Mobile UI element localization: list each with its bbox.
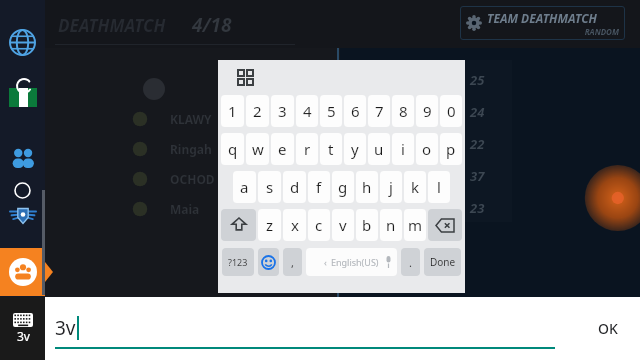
button[interactable]: e [271,133,294,165]
staticText: z [266,215,274,235]
staticText: 3v [17,328,30,344]
button[interactable]: w [246,133,269,165]
button[interactable]: f [308,171,330,203]
staticText: h [362,177,372,197]
staticText: 4/18 [192,12,232,38]
button[interactable]: a [233,171,256,203]
staticText: 3v [55,315,76,341]
staticText: s [266,177,274,197]
staticText: 2 [253,101,262,121]
staticText: n [386,215,396,235]
staticText: j [389,177,393,197]
staticText: e [278,139,287,159]
button[interactable]: ?123 [222,248,254,276]
staticText: g [338,177,348,197]
button[interactable]: 4 [296,95,318,127]
button[interactable]: n [380,209,402,241]
staticText: o [422,139,432,159]
button[interactable]: t [320,133,342,165]
button[interactable]: Keyboard input method [0,297,45,360]
button[interactable]: x [283,209,306,241]
button[interactable]: i [392,133,414,165]
button[interactable]: Done [424,248,461,276]
staticText: t [328,139,334,159]
staticText: r [304,139,311,159]
staticText: c [315,215,323,235]
staticText: 24 [470,103,485,121]
button[interactable]: b [356,209,378,241]
button[interactable]: 8 [392,95,414,127]
staticText: 25 [470,71,485,89]
button[interactable]: Keyboard toolbar [234,66,256,88]
button[interactable]: 5 [320,95,342,127]
button[interactable]: 3v [55,307,555,349]
staticText: b [362,215,372,235]
staticText: 5 [327,101,336,121]
button[interactable]: o [416,133,438,165]
button[interactable]: Language [0,20,45,65]
button[interactable]: y [344,133,366,165]
button[interactable]: p [440,133,462,165]
staticText: Done [430,255,456,269]
staticText: OK [598,319,618,338]
button[interactable]: Friends [0,135,45,180]
button[interactable]: q [221,133,244,165]
button[interactable]: c [308,209,330,241]
staticText: 7 [375,101,384,121]
button[interactable]: Emoji [258,248,279,276]
staticText: a [240,177,249,197]
staticText: p [446,139,456,159]
staticText: l [437,177,441,197]
button[interactable]: l [428,171,450,203]
button[interactable]: TEAM DEATHMATCH [460,6,625,40]
staticText: Maia [170,201,200,217]
staticText: i [401,139,405,159]
button[interactable]: Backspace [428,209,462,241]
button[interactable]: Rank [0,192,45,237]
button[interactable]: . [401,248,420,276]
button[interactable]: h [356,171,378,203]
button[interactable]: Clan [0,248,45,296]
staticText: TEAM DEATHMATCH [487,10,597,26]
button[interactable]: , [283,248,302,276]
button[interactable]: Region flag [0,75,45,120]
staticText: 8 [399,101,408,121]
staticText: DEATHMATCH [58,14,166,37]
button[interactable]: 2 [246,95,269,127]
button[interactable]: j [380,171,402,203]
button[interactable]: 7 [368,95,390,127]
button[interactable]: OK [583,307,633,349]
button[interactable]: v [332,209,354,241]
staticText: 3 [278,101,287,121]
button[interactable]: d [283,171,306,203]
staticText: 6 [351,101,360,121]
staticText: English(US) [331,256,379,268]
staticText: 1 [228,101,237,121]
button[interactable]: 6 [344,95,366,127]
button[interactable]: m [404,209,426,241]
staticText: 23 [470,199,485,217]
button[interactable]: r [296,133,318,165]
button[interactable]: g [332,171,354,203]
staticText: ‹ [324,256,327,268]
staticText: 22 [470,135,485,153]
staticText: OCHOD [170,171,215,187]
button[interactable]: Shift [221,209,256,241]
button[interactable]: ‹ [306,248,397,276]
staticText: RANDOM [487,26,619,37]
button[interactable]: s [258,171,281,203]
staticText: 4 [303,101,312,121]
button[interactable]: 9 [416,95,438,127]
staticText: 37 [470,167,485,185]
button[interactable]: k [404,171,426,203]
staticText: v [339,215,347,235]
staticText: m [408,215,423,235]
button[interactable]: 0 [440,95,462,127]
staticText: u [374,139,384,159]
button[interactable]: u [368,133,390,165]
staticText: y [351,139,359,159]
button[interactable]: z [258,209,281,241]
staticText: Ringah [170,141,212,157]
button[interactable]: 3 [271,95,294,127]
button[interactable]: 1 [221,95,244,127]
